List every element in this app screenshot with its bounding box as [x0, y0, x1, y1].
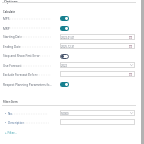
button[interactable]: 50000: [60, 110, 135, 116]
button[interactable]: Toggle on: [60, 82, 69, 87]
button[interactable]: Toggle off: [60, 54, 69, 59]
button[interactable]: Open list: [130, 112, 133, 114]
staticText: 2022-01-01: [61, 36, 75, 40]
staticText: Starting Date: [3, 35, 23, 39]
staticText: No.: [8, 112, 13, 116]
button[interactable]: 2022-01-01: [60, 34, 135, 40]
staticText: •: [5, 121, 7, 125]
staticText: MRP: [3, 27, 10, 31]
button[interactable]: + Filter...: [5, 130, 25, 135]
staticText: Calculate: [3, 10, 16, 14]
staticText: Use Forecast: [3, 64, 22, 68]
staticText: 2025-12-31: [61, 45, 75, 49]
staticText: MPS: [3, 17, 10, 21]
staticText: Description: [8, 121, 25, 125]
button[interactable]: Pick date: [129, 73, 132, 76]
button[interactable]: Pick date: [129, 45, 132, 48]
staticText: •: [5, 112, 7, 116]
button[interactable]: Toggle on: [60, 16, 69, 21]
staticText: + Filter...: [5, 131, 17, 135]
staticText: 50000: [61, 112, 69, 116]
staticText: Options: [4, 0, 18, 4]
staticText: Filter: Item: [3, 100, 18, 104]
button[interactable]: [60, 119, 135, 125]
staticText: 2022: [61, 64, 67, 68]
staticText: Stop and Show First Error: [3, 54, 40, 58]
staticText: Ending Date: [3, 45, 21, 49]
button[interactable]: Toggle on: [60, 26, 69, 31]
button[interactable]: Pick date: [129, 36, 132, 39]
button[interactable]: 2025-12-31: [60, 43, 135, 49]
button[interactable]: Open list: [130, 64, 133, 66]
button[interactable]: 2022: [60, 62, 135, 68]
staticText: Exclude Forecast Before: [3, 73, 38, 77]
button[interactable]: [60, 71, 135, 77]
staticText: Respect Planning Parameters fo…: [3, 83, 52, 87]
